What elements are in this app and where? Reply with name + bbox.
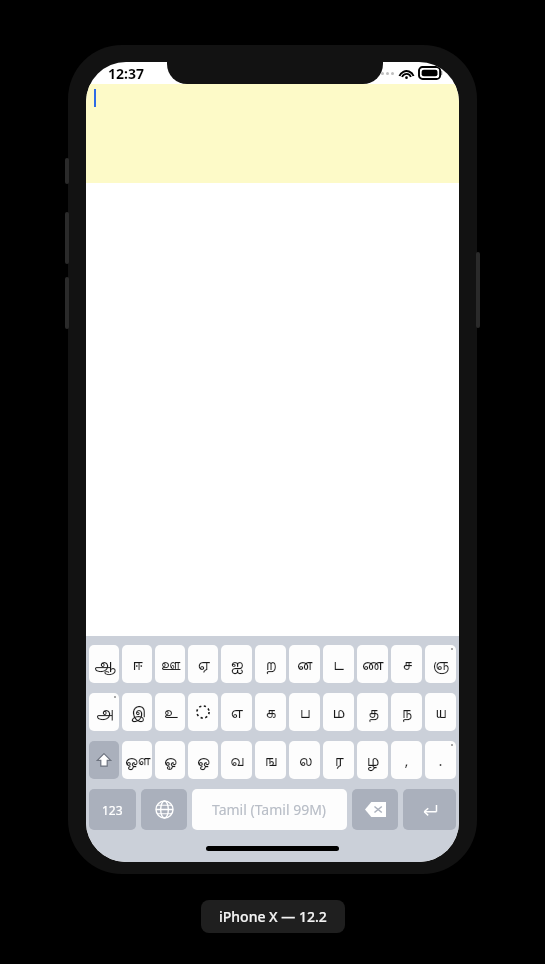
staticText: எ (230, 704, 243, 721)
button[interactable]: ஒ (188, 741, 218, 779)
button[interactable]: ட (323, 645, 354, 683)
button[interactable]: எ (221, 693, 252, 731)
staticText: ஞ (432, 656, 449, 673)
staticText: ர (334, 752, 344, 769)
button[interactable]: iPhone X — 12.2 (219, 907, 327, 926)
staticText: ஓ (163, 752, 177, 769)
staticText: , (404, 750, 409, 770)
button[interactable] (188, 693, 218, 731)
staticText: ற (265, 656, 276, 673)
staticText: த (367, 704, 379, 721)
button[interactable]: உ (155, 693, 185, 731)
button[interactable]: 123 (89, 789, 136, 830)
button[interactable]: ங (255, 741, 286, 779)
button[interactable]: ஓ (155, 741, 185, 779)
staticText: ன (296, 656, 313, 673)
staticText: அ (95, 704, 113, 721)
button[interactable]: ஏ (188, 645, 218, 683)
button[interactable]: ஈ (122, 645, 152, 683)
button[interactable]: ற (255, 645, 286, 683)
button[interactable]: , (391, 741, 422, 779)
staticText: ண (361, 656, 384, 673)
button[interactable]: ஞ (425, 645, 456, 683)
staticText: ய (435, 704, 446, 721)
staticText: ல (298, 752, 312, 769)
button[interactable]: ப (289, 693, 320, 731)
staticText: 123 (102, 802, 123, 818)
staticText: ந (401, 704, 412, 721)
staticText: ட (333, 656, 344, 673)
button[interactable]: Switch keyboard language (141, 789, 187, 830)
button[interactable] (86, 84, 459, 183)
button[interactable]: ண (357, 645, 388, 683)
staticText: ஏ (197, 656, 210, 673)
button[interactable]: ஊ (155, 645, 185, 683)
button[interactable]: Return (403, 789, 456, 830)
staticText: க (265, 704, 276, 721)
button[interactable]: ய (425, 693, 456, 731)
button[interactable]: ஔ (122, 741, 152, 779)
staticText: உ (163, 704, 178, 721)
staticText: iPhone X — 12.2 (219, 907, 327, 926)
button[interactable]: Shift (89, 741, 119, 779)
button[interactable]: ந (391, 693, 422, 731)
staticText: ம (332, 704, 345, 721)
button[interactable]: ஆ (89, 645, 119, 683)
staticText: ங (264, 752, 277, 769)
staticText: வ (229, 752, 244, 769)
button[interactable]: க (255, 693, 286, 731)
button[interactable]: ர (323, 741, 354, 779)
button[interactable]: ழ (357, 741, 388, 779)
button[interactable]: த (357, 693, 388, 731)
button[interactable]: Tamil (Tamil 99M) (192, 789, 347, 830)
staticText: இ (130, 704, 145, 721)
button[interactable]: ஐ (221, 645, 252, 683)
button[interactable]: ல (289, 741, 320, 779)
button[interactable]: . (425, 741, 456, 779)
staticText: . (438, 750, 443, 770)
button[interactable]: ம (323, 693, 354, 731)
staticText: ஆ (93, 656, 116, 673)
button[interactable]: இ (122, 693, 152, 731)
staticText: ஈ (132, 656, 143, 673)
staticText: 12:37 (108, 64, 144, 83)
staticText: ஒ (196, 752, 210, 769)
staticText: ஊ (160, 656, 181, 673)
button[interactable]: அ (89, 693, 119, 731)
button[interactable]: ன (289, 645, 320, 683)
staticText: ஔ (124, 752, 151, 769)
button[interactable]: ச (391, 645, 422, 683)
staticText: ச (402, 656, 412, 673)
button[interactable]: Backspace (352, 789, 398, 830)
button[interactable]: வ (221, 741, 252, 779)
staticText: ஐ (230, 656, 243, 673)
staticText: Tamil (Tamil 99M) (212, 800, 327, 819)
staticText: ழ (366, 752, 379, 769)
staticText: ப (299, 704, 310, 721)
